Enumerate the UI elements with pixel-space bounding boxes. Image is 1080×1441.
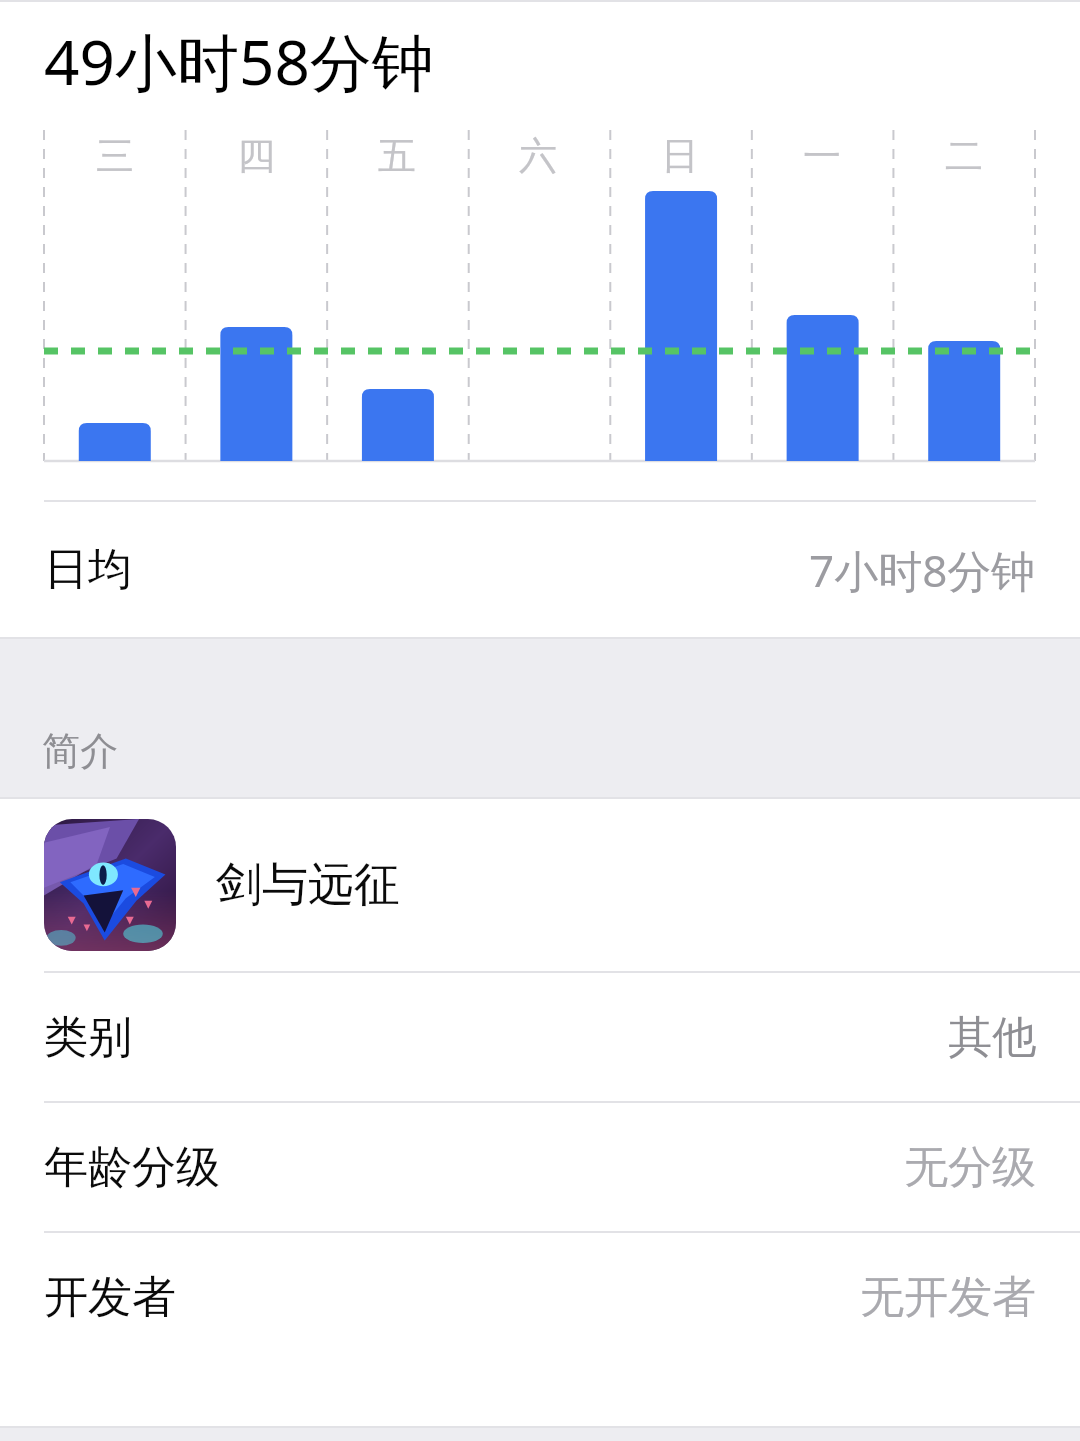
staticText: 六 — [519, 132, 557, 180]
button[interactable]: 剑与远征 — [0, 799, 1080, 971]
staticText: 年龄分级 — [44, 1140, 220, 1195]
staticText: 简介 — [42, 727, 118, 775]
staticText: 开发者 — [44, 1270, 176, 1325]
staticText: 一 — [803, 132, 841, 180]
staticText: 五 — [378, 132, 416, 180]
staticText: 其他 — [948, 1010, 1036, 1065]
staticText: 7小时8分钟 — [809, 540, 1036, 600]
button[interactable]: 开发者 — [0, 1233, 1080, 1361]
staticText: 无开发者 — [860, 1270, 1036, 1325]
staticText: 类别 — [44, 1010, 132, 1065]
button[interactable]: 年龄分级 — [0, 1103, 1080, 1231]
staticText: 日 — [661, 132, 699, 180]
staticText: 三 — [96, 132, 134, 180]
staticText: 四 — [237, 132, 275, 180]
staticText: 日均 — [44, 542, 132, 597]
staticText: 剑与远征 — [216, 856, 400, 914]
staticText: 二 — [945, 132, 983, 180]
button[interactable]: 日均 — [0, 502, 1080, 637]
staticText: 无分级 — [904, 1140, 1036, 1195]
staticText: 49小时58分钟 — [44, 19, 434, 104]
button[interactable]: 类别 — [0, 973, 1080, 1101]
